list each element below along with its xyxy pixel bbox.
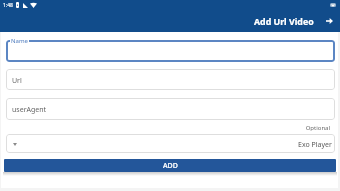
staticText: Optional (0, 124, 330, 132)
staticText: ADD (163, 161, 178, 171)
button[interactable] (6, 98, 335, 120)
button[interactable] (6, 40, 335, 62)
button[interactable]: Exo Player (6, 134, 335, 153)
staticText: Add Url Video (254, 16, 314, 28)
staticText: Name (11, 37, 28, 45)
staticText: userAgent (12, 105, 47, 115)
staticText: Exo Player (298, 140, 332, 150)
button[interactable]: ADD (4, 159, 336, 172)
staticText: Url (12, 76, 22, 86)
staticText: 1:48 (3, 2, 13, 9)
button[interactable] (6, 69, 335, 90)
button[interactable]: Submit (322, 14, 336, 28)
